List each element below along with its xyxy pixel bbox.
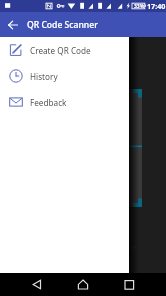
staticText: QR Code Scanner bbox=[27, 19, 98, 31]
button[interactable]: History bbox=[0, 63, 129, 89]
staticText: 33% bbox=[134, 3, 145, 10]
button[interactable]: Create QR Code bbox=[0, 37, 129, 63]
staticText: Feedback bbox=[30, 97, 67, 108]
staticText: Place a QR code inside the frame bbox=[29, 243, 137, 253]
staticText: Create QR Code bbox=[30, 45, 91, 56]
button[interactable]: Back bbox=[0, 12, 25, 37]
staticText: 17:40 bbox=[147, 1, 166, 11]
staticText: History bbox=[30, 71, 58, 82]
button[interactable]: Back bbox=[0, 273, 40, 296]
button[interactable]: Feedback bbox=[0, 89, 129, 115]
